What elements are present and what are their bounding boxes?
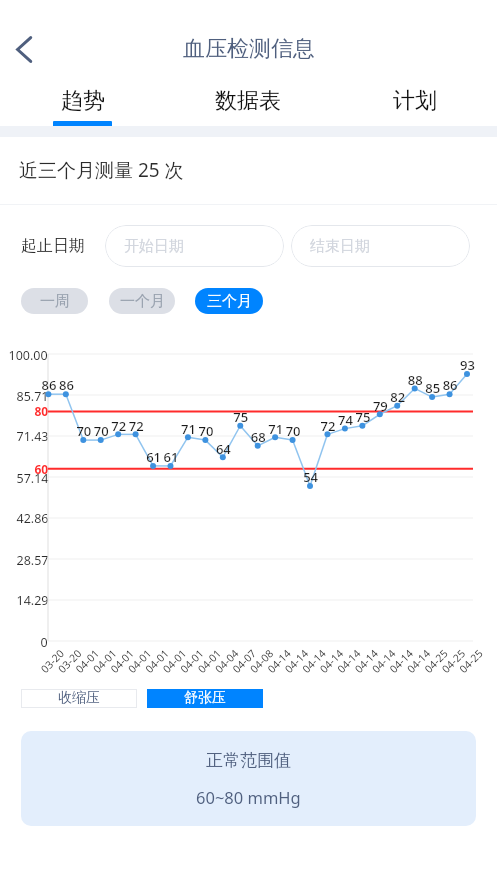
button[interactable]: 开始日期 xyxy=(105,225,284,267)
button[interactable]: 数据表 xyxy=(165,78,331,127)
staticText: 结束日期 xyxy=(310,237,370,256)
staticText: 三个月 xyxy=(207,292,252,311)
staticText: 舒张压 xyxy=(184,689,226,707)
staticText: 一个月 xyxy=(120,292,165,311)
staticText: 数据表 xyxy=(215,87,281,115)
button[interactable]: 三个月 xyxy=(195,288,263,314)
staticText: 近三个月测量 25 次 xyxy=(19,157,184,183)
staticText: 起止日期 xyxy=(21,236,85,256)
staticText: 计划 xyxy=(393,87,437,115)
button[interactable]: 一个月 xyxy=(109,288,175,314)
staticText: 开始日期 xyxy=(124,237,184,256)
staticText: 60~80 mmHg xyxy=(196,786,301,808)
staticText: 血压检测信息 xyxy=(183,35,315,63)
button[interactable]: 收缩压 xyxy=(21,689,137,708)
button[interactable]: Back xyxy=(1,26,47,72)
staticText: 一周 xyxy=(40,292,70,311)
staticText: 趋势 xyxy=(61,87,105,115)
button[interactable]: 正常范围值 xyxy=(21,731,476,826)
button[interactable]: 计划 xyxy=(331,78,497,127)
button[interactable]: 舒张压 xyxy=(147,689,263,708)
button[interactable]: 趋势 xyxy=(0,78,165,127)
staticText: 正常范围值 xyxy=(206,750,291,771)
staticText: 收缩压 xyxy=(58,689,100,707)
button[interactable]: 结束日期 xyxy=(291,225,470,267)
button[interactable]: 一周 xyxy=(21,288,88,314)
